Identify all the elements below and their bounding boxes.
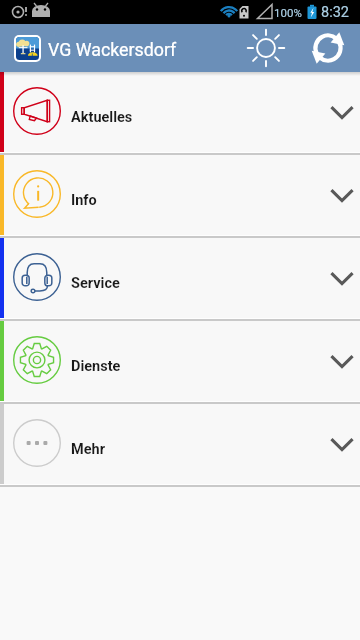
staticText: Aktuelles (71, 109, 133, 126)
staticText: 100% (274, 6, 302, 19)
button[interactable]: Aktuelles (0, 72, 360, 152)
button[interactable]: Weather (242, 24, 290, 72)
button[interactable]: Mehr (0, 404, 360, 484)
staticText: Mehr (71, 441, 105, 458)
staticText: Info (71, 192, 97, 209)
button[interactable]: Expand Dienste (319, 338, 360, 384)
button[interactable]: Dienste (0, 321, 360, 401)
button[interactable]: Info (0, 155, 360, 235)
staticText: Service (71, 275, 120, 292)
button[interactable]: Expand Aktuelles (319, 89, 360, 135)
button[interactable]: Service (0, 238, 360, 318)
staticText: VG Wackersdorf (48, 39, 177, 60)
button[interactable]: Expand Info (319, 172, 360, 218)
staticText: Dienste (71, 358, 121, 375)
button[interactable]: Refresh (304, 24, 352, 72)
button[interactable]: Expand Service (319, 255, 360, 301)
button[interactable]: Expand Mehr (319, 421, 360, 467)
staticText: 8:32 (321, 4, 349, 21)
